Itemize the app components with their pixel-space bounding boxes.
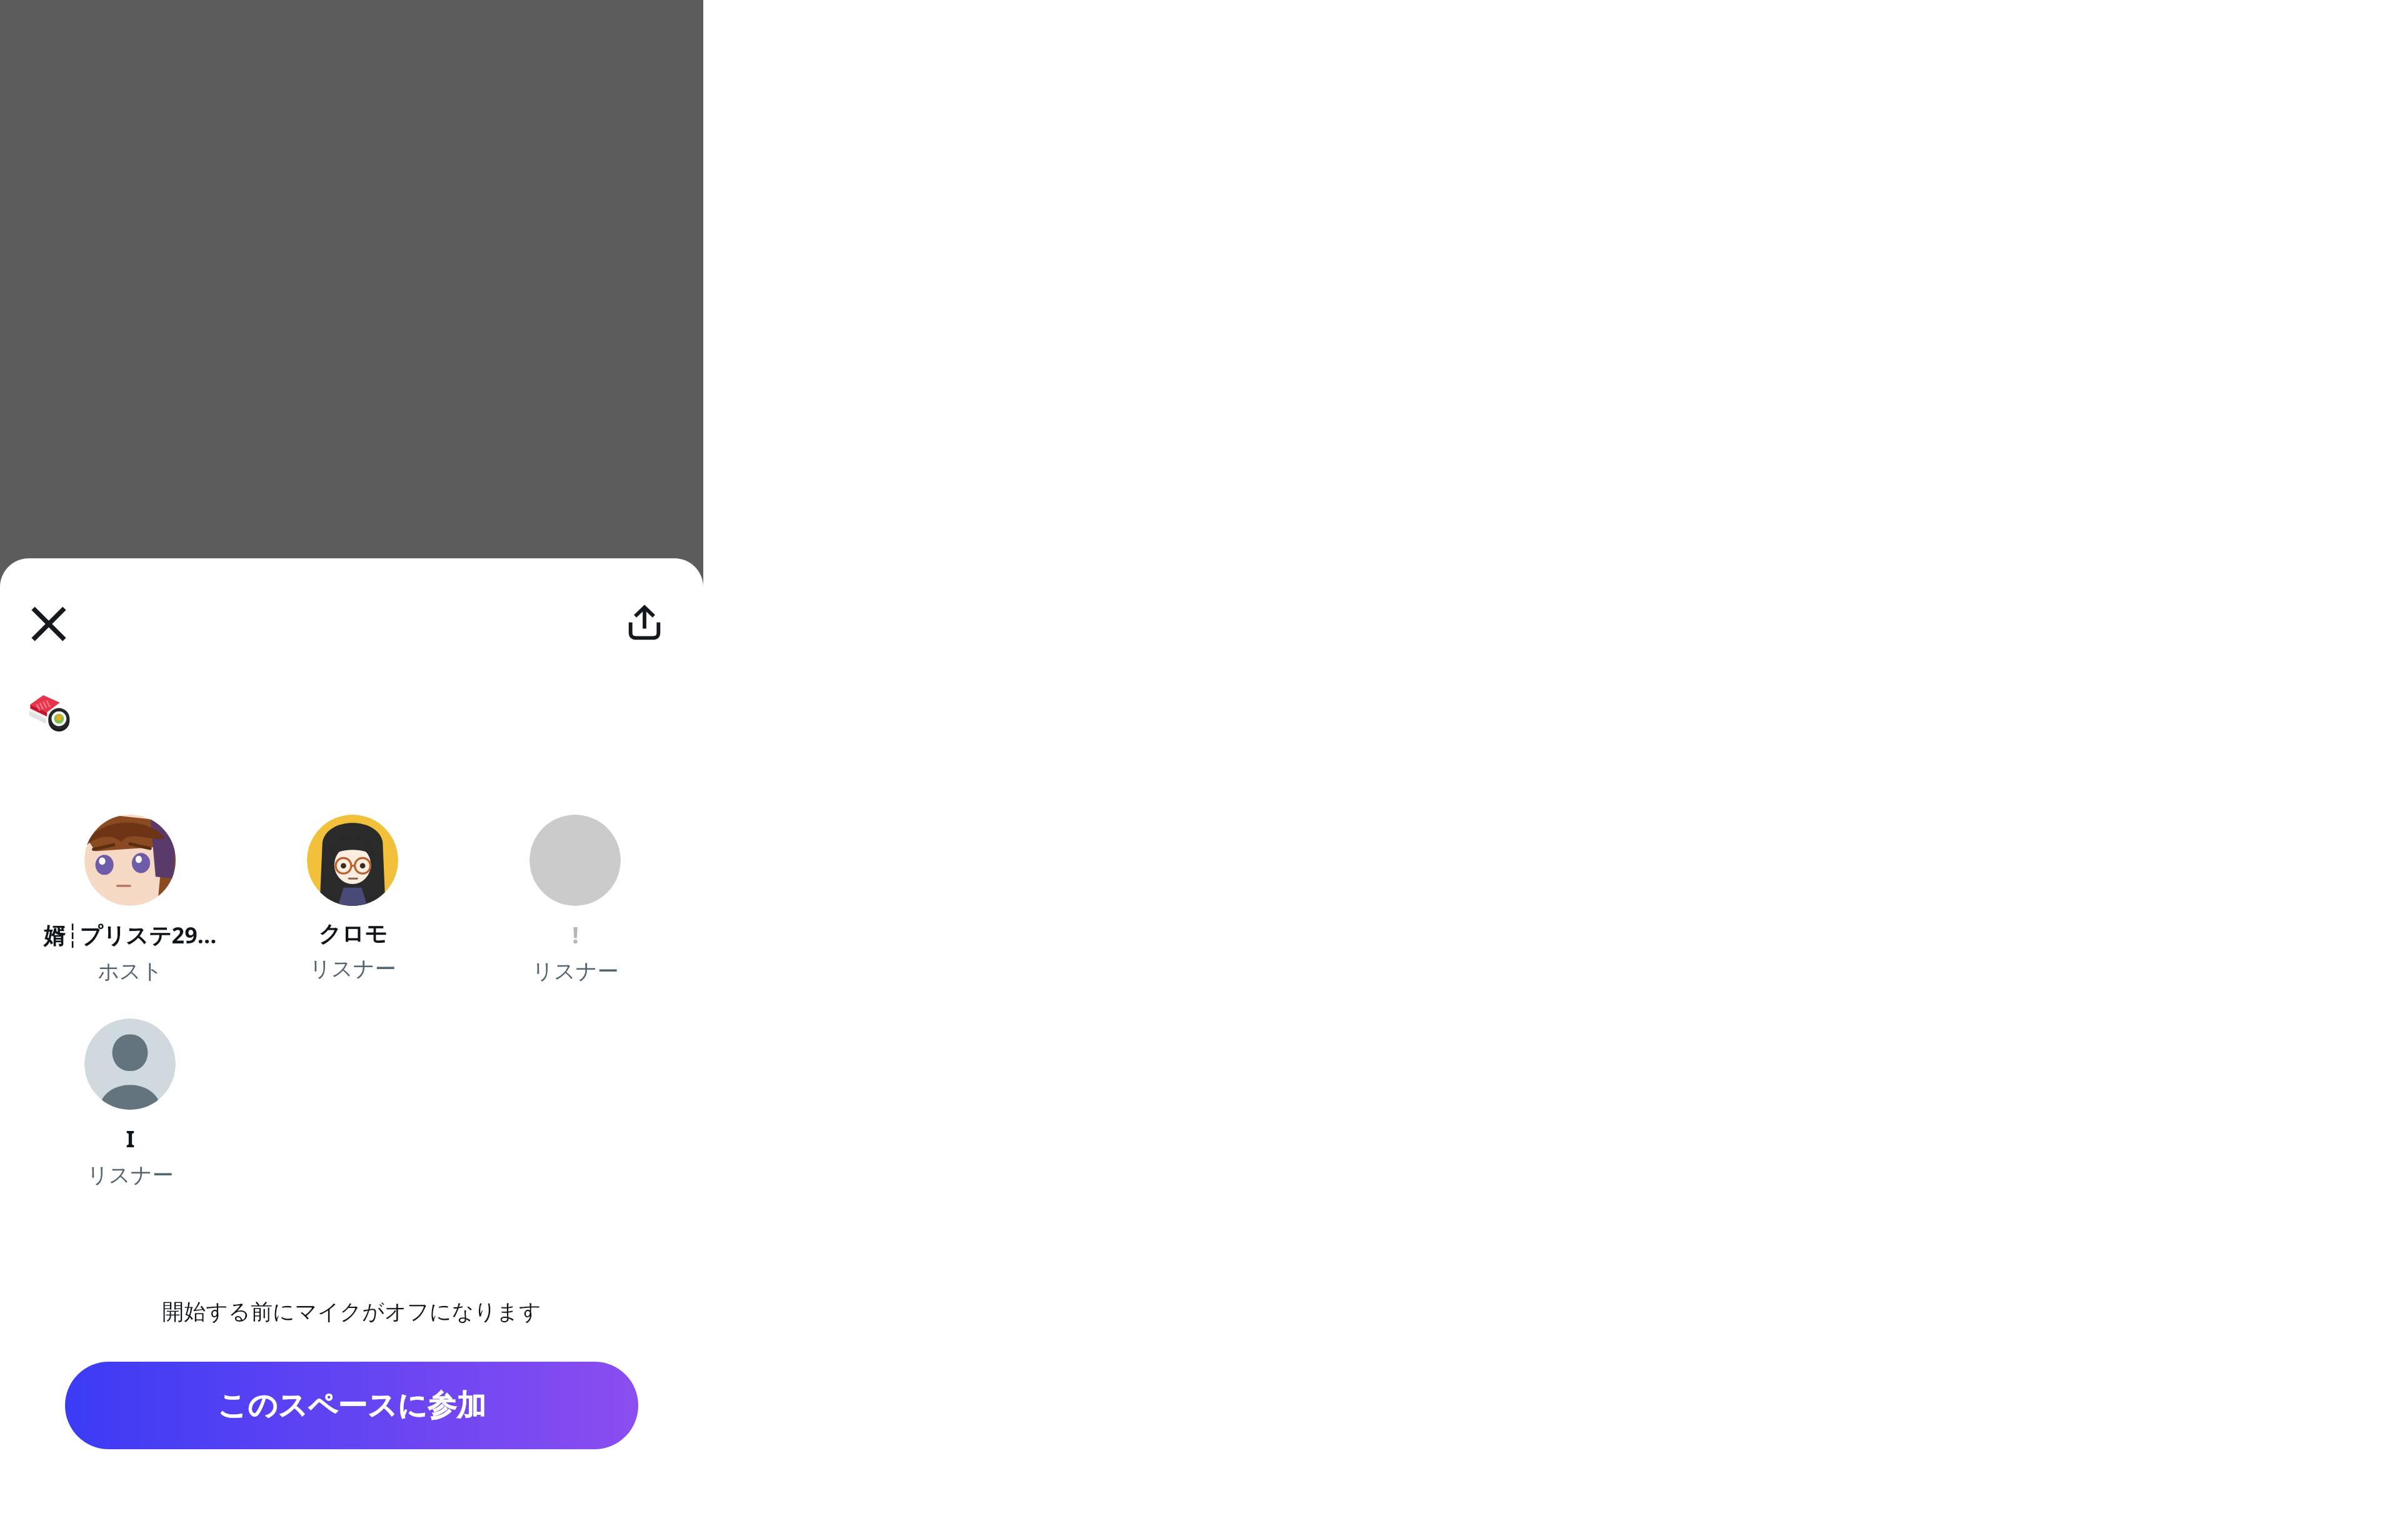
staticText: 婿┆プリステ29… [43,920,217,950]
staticText: 開始する前にマイクがオフになります [0,1298,703,1325]
button[interactable]: ! [464,808,686,991]
staticText: ホスト [98,958,163,985]
staticText: リスナー [309,955,396,982]
button[interactable]: このスペースに参加 [65,1362,638,1449]
staticText: クロモ [318,920,388,948]
staticText: このスペースに参加 [218,1387,486,1424]
staticText: I [126,1123,135,1154]
button[interactable]: 閉じる [19,594,79,654]
staticText: リスナー [87,1162,174,1189]
button[interactable]: クロモ [241,808,464,988]
button[interactable]: I [19,1012,241,1195]
button[interactable]: 婿┆プリステ29… [19,808,241,991]
staticText: リスナー [532,958,619,985]
staticText: ! [572,920,579,950]
button[interactable]: 共有 [615,594,675,654]
